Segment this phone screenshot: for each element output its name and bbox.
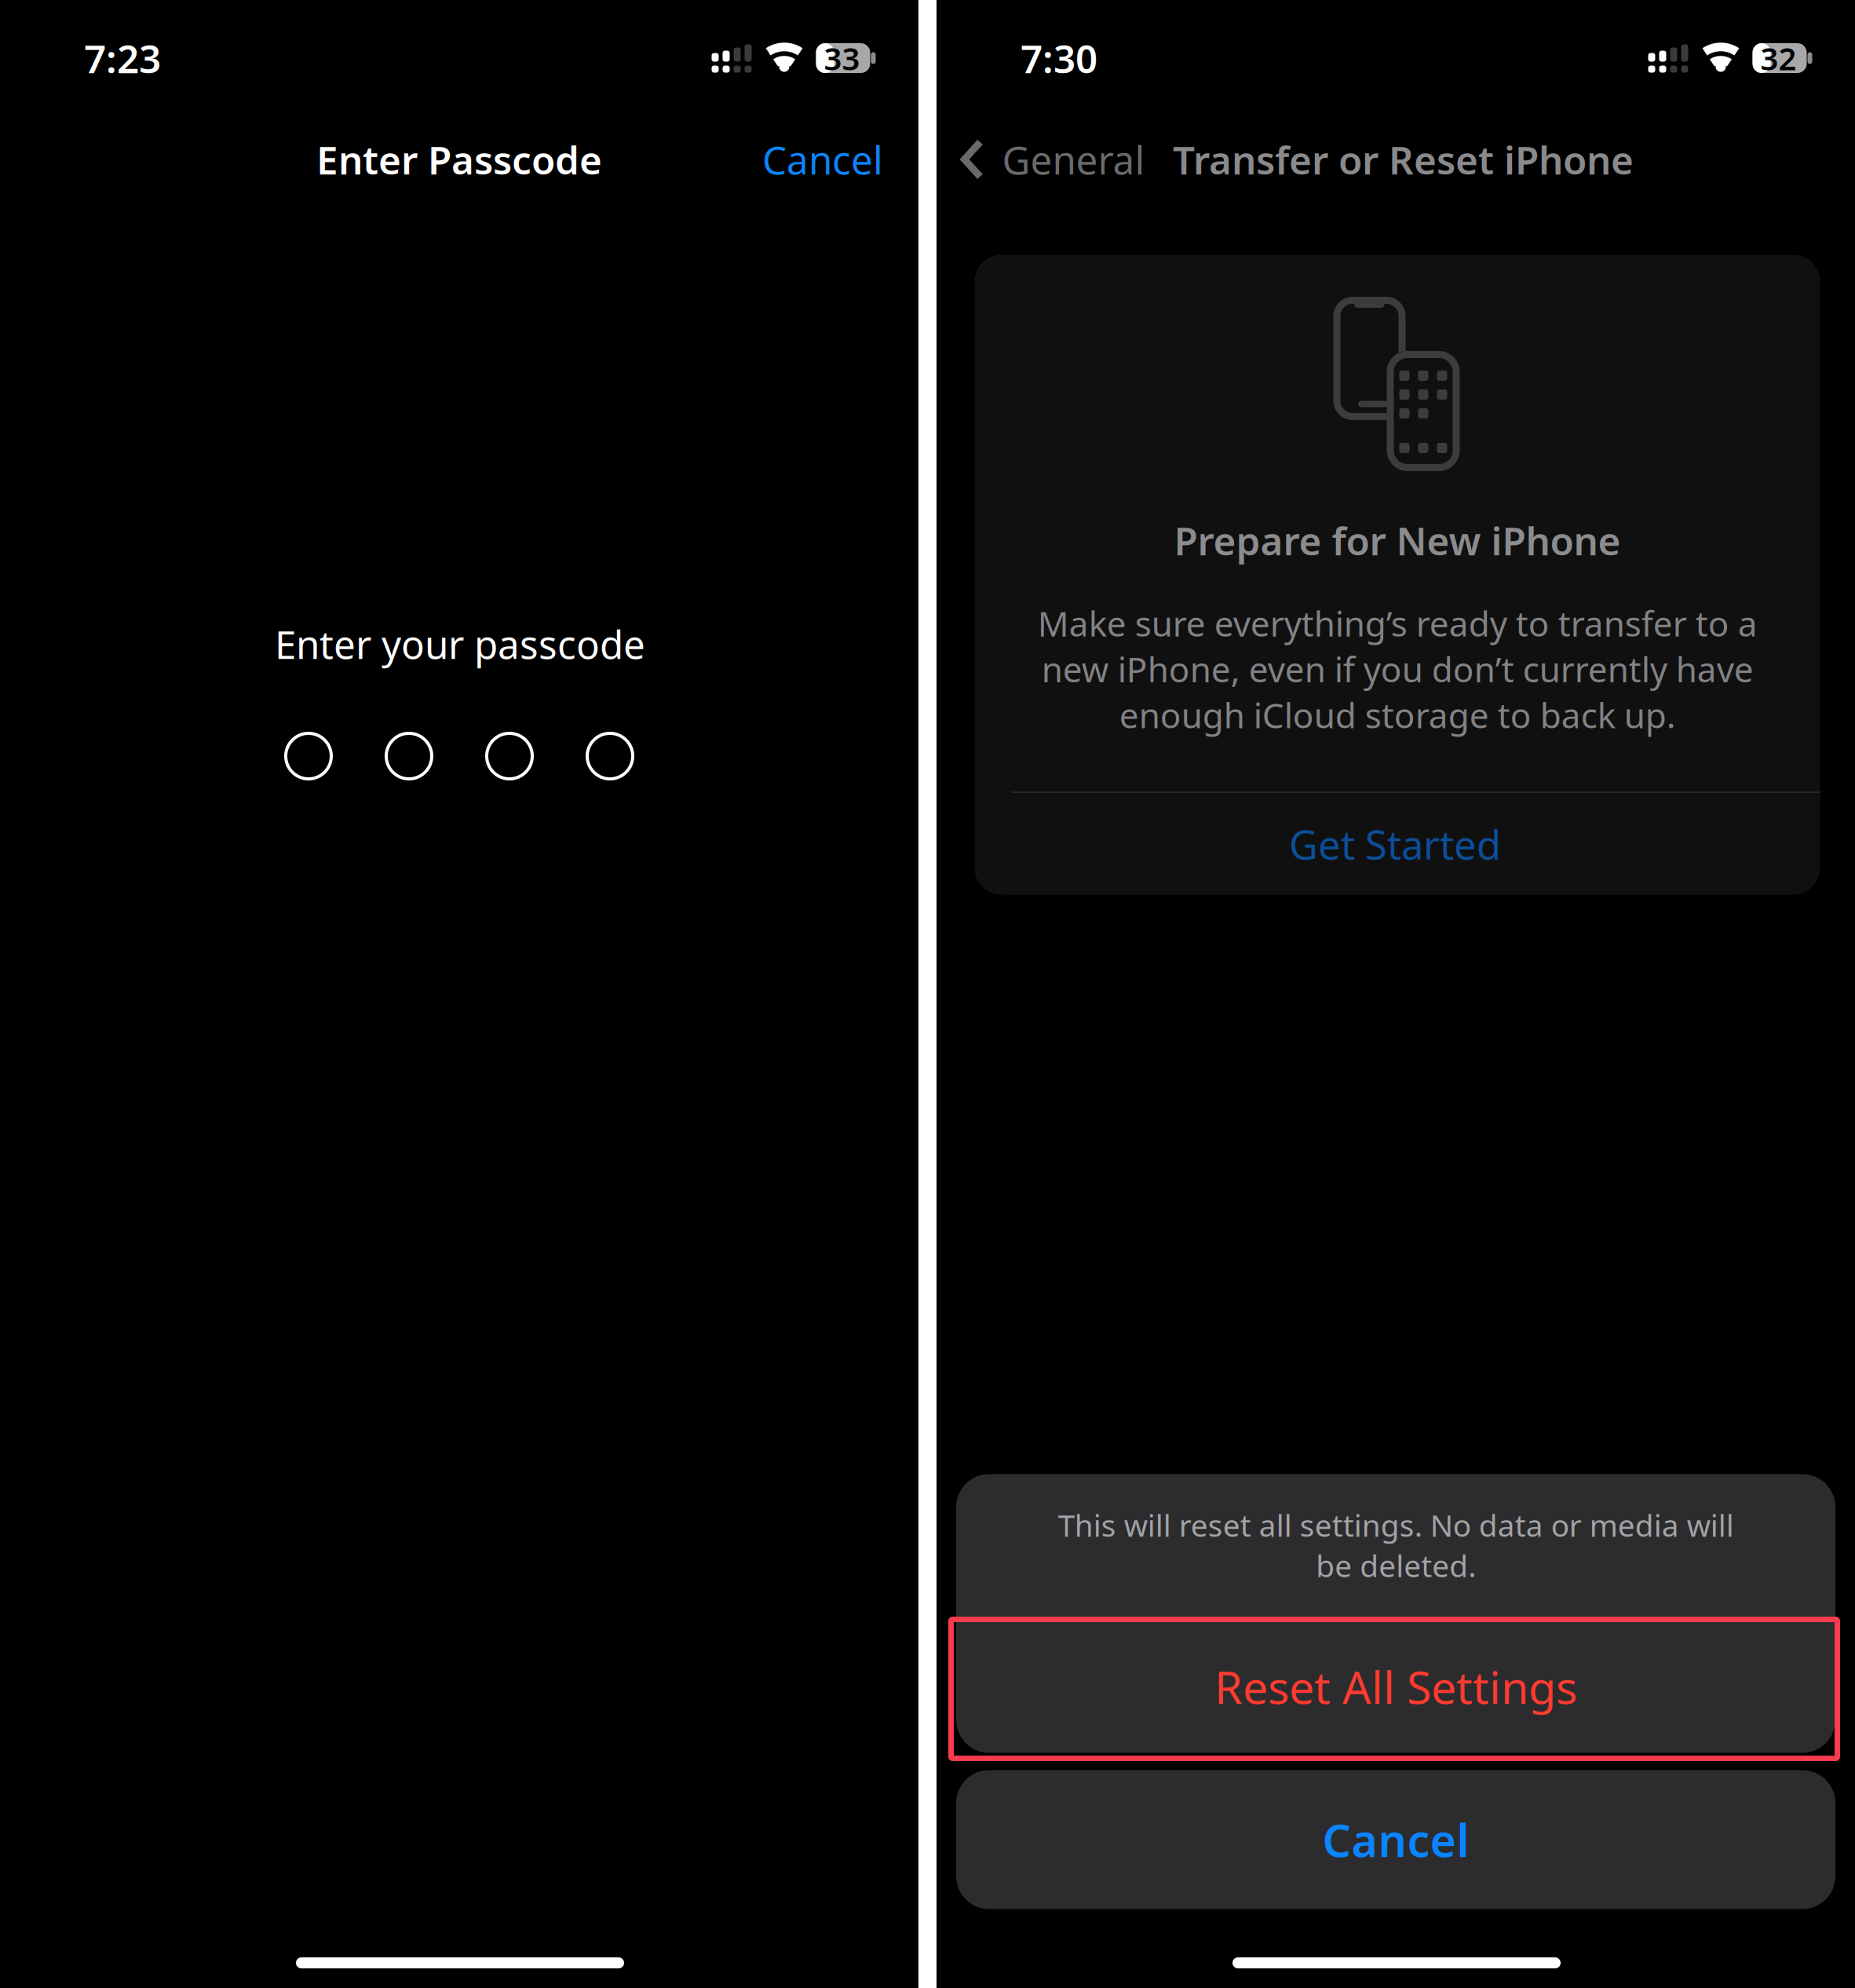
- staticText: Prepare for New iPhone: [1174, 514, 1621, 566]
- button[interactable]: Get Started: [972, 793, 1818, 895]
- staticText: Transfer or Reset iPhone: [1173, 134, 1634, 185]
- staticText: Reset All Settings: [1214, 1657, 1577, 1716]
- button[interactable]: Cancel: [956, 1770, 1835, 1909]
- staticText: Cancel: [762, 134, 883, 185]
- staticText: Enter Passcode: [316, 134, 602, 185]
- staticText: 32: [1760, 37, 1797, 79]
- staticText: Cancel: [1322, 1810, 1469, 1869]
- button[interactable]: Reset All Settings: [956, 1620, 1835, 1753]
- button[interactable]: Back to General: [960, 122, 1152, 197]
- staticText: Get Started: [1289, 818, 1501, 870]
- staticText: 7:23: [84, 32, 161, 84]
- staticText: 7:30: [1021, 32, 1097, 84]
- staticText: Enter your passcode: [275, 618, 645, 669]
- staticText: This will reset all settings. No data or…: [1058, 1505, 1734, 1586]
- staticText: General: [1002, 134, 1145, 185]
- button[interactable]: Cancel: [703, 122, 883, 197]
- staticText: Make sure everything’s ready to transfer…: [1037, 600, 1757, 738]
- staticText: 33: [824, 37, 860, 79]
